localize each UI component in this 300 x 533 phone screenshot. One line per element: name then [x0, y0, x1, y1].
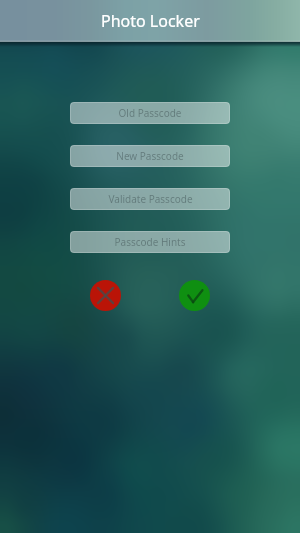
button[interactable]: Cancel — [90, 280, 121, 311]
button[interactable]: Old Passcode — [70, 102, 230, 124]
button[interactable]: Validate Passcode — [70, 188, 230, 210]
button[interactable]: New Passcode — [70, 145, 230, 167]
staticText: Photo Locker — [101, 10, 200, 32]
staticText: New Passcode — [116, 149, 184, 163]
staticText: Passcode Hints — [114, 235, 186, 249]
button[interactable]: Photo Locker — [0, 0, 300, 42]
button[interactable]: Confirm — [179, 280, 210, 311]
staticText: Validate Passcode — [108, 192, 193, 206]
button[interactable]: Passcode Hints — [70, 231, 230, 253]
staticText: Old Passcode — [118, 106, 182, 120]
